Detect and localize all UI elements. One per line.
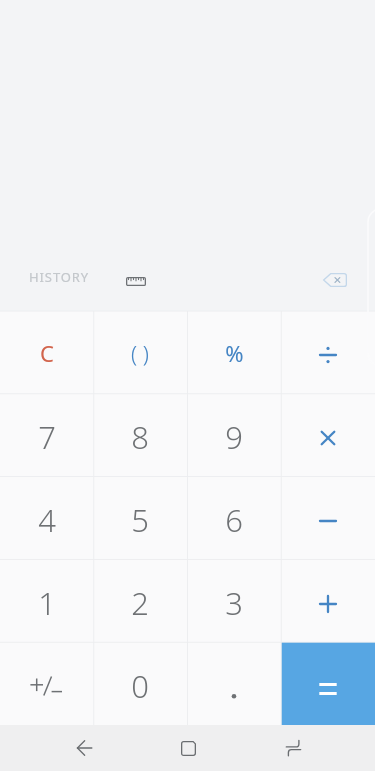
staticText: HISTORY	[29, 268, 90, 286]
staticText: 1	[38, 582, 56, 624]
button[interactable]: %	[187, 311, 281, 393]
button[interactable]: 6	[187, 476, 281, 559]
button[interactable]: C	[0, 311, 93, 393]
button[interactable]: HISTORY	[17, 262, 102, 292]
button[interactable]: Add	[281, 559, 375, 642]
button[interactable]: 7	[0, 393, 93, 476]
staticText: 0	[131, 665, 149, 707]
staticText: 8	[131, 416, 149, 458]
staticText: %	[225, 338, 244, 368]
staticText: 4	[38, 499, 56, 541]
button[interactable]: Divide	[281, 311, 375, 393]
button[interactable]: 3	[187, 559, 281, 642]
staticText: 3	[225, 582, 243, 624]
staticText: 7	[38, 416, 56, 458]
button[interactable]: ( )	[93, 311, 187, 393]
button[interactable]: 9	[187, 393, 281, 476]
staticText: 9	[225, 416, 243, 458]
button[interactable]: Plus or minus	[0, 642, 93, 725]
button[interactable]: Back	[62, 734, 106, 762]
button[interactable]: Decimal point	[187, 642, 281, 725]
button[interactable]: Home	[166, 734, 210, 762]
button[interactable]: 4	[0, 476, 93, 559]
button[interactable]: Recent apps	[271, 734, 315, 762]
button[interactable]: 2	[93, 559, 187, 642]
button[interactable]: Subtract	[281, 476, 375, 559]
button[interactable]: 8	[93, 393, 187, 476]
button[interactable]: Unit converter	[117, 261, 154, 298]
staticText: 2	[131, 582, 149, 624]
button[interactable]: 0	[93, 642, 187, 725]
staticText: 6	[225, 499, 243, 541]
staticText: 5	[131, 499, 149, 541]
button[interactable]: Backspace	[316, 261, 353, 298]
button[interactable]: 1	[0, 559, 93, 642]
button[interactable]: 5	[93, 476, 187, 559]
staticText: C	[40, 338, 54, 368]
staticText: ( )	[131, 338, 149, 368]
button[interactable]: Multiply	[281, 393, 375, 476]
button[interactable]: Equals	[281, 642, 375, 725]
